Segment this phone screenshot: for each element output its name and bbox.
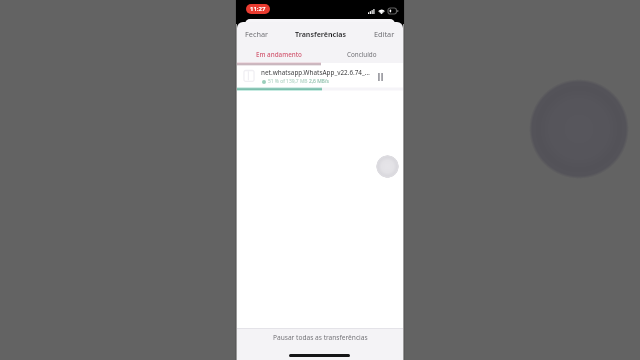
button[interactable]: net.whatsapp.WhatsApp_v22.6.74_… xyxy=(237,63,403,90)
button[interactable]: Pausar transferência xyxy=(371,68,389,86)
staticText: Fechar xyxy=(245,29,269,37)
button[interactable]: Concluído xyxy=(320,48,403,61)
staticText: net.whatsapp.WhatsApp_v22.6.74_… xyxy=(261,68,373,77)
staticText: Concluído xyxy=(347,50,377,59)
staticText: Pausar todas as transferências xyxy=(273,333,368,342)
staticText: 11:27 xyxy=(250,5,266,13)
button[interactable]: Pausar todas as transferências xyxy=(237,330,403,344)
staticText: Editar xyxy=(374,29,395,37)
button[interactable]: Fechar xyxy=(237,26,277,40)
staticText: Transferências xyxy=(295,30,346,40)
button[interactable]: Editar xyxy=(366,26,403,40)
staticText: Em andamento xyxy=(256,50,302,59)
staticText: 2,6 MB/s xyxy=(309,78,329,85)
staticText: 51 % of 139,7 MB xyxy=(268,78,309,85)
button[interactable]: Em andamento xyxy=(237,48,320,61)
button[interactable]: AssistiveTouch xyxy=(376,155,399,178)
